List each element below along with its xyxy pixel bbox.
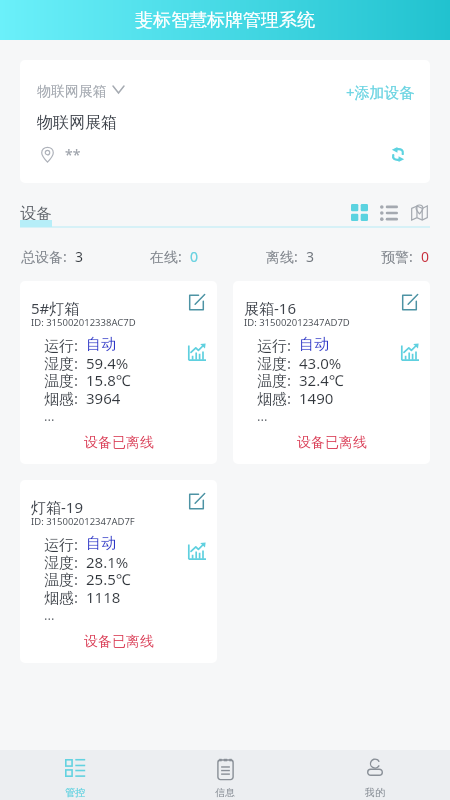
staticText: 3	[75, 247, 84, 266]
staticText: **	[65, 145, 81, 164]
staticText: 自动	[86, 335, 116, 354]
staticText: 运行:	[44, 335, 86, 355]
staticText: 烟感:	[44, 587, 86, 607]
staticText: ID: 315002012347AD7F	[31, 515, 135, 528]
staticText: ID: 315002012338AC7D	[31, 316, 136, 329]
staticText: 3	[306, 247, 315, 266]
staticText: ...	[44, 407, 55, 425]
staticText: 32.4℃	[299, 370, 344, 390]
staticText: 在线:	[150, 247, 190, 266]
staticText: 信息	[215, 786, 235, 799]
staticText: 59.4%	[86, 353, 129, 373]
button[interactable]: Edit	[401, 294, 418, 311]
staticText: 运行:	[44, 534, 86, 554]
staticText: 28.1%	[86, 552, 129, 572]
button[interactable]: 信息	[150, 750, 300, 800]
button[interactable]: 我的	[300, 750, 450, 800]
button[interactable]: 物联网展箱	[20, 60, 430, 183]
staticText: 温度:	[44, 569, 86, 589]
staticText: 烟感:	[257, 388, 299, 408]
button[interactable]: Chart	[187, 342, 207, 362]
staticText: 斐标智慧标牌管理系统	[135, 9, 315, 32]
staticText: 展箱-16	[244, 298, 296, 318]
staticText: 物联网展箱	[37, 113, 117, 133]
button[interactable]: Sync	[391, 147, 405, 162]
staticText: 自动	[299, 335, 329, 354]
staticText: 湿度:	[44, 552, 86, 572]
button[interactable]: 灯箱-19	[20, 480, 217, 663]
staticText: 湿度:	[257, 353, 299, 373]
button[interactable]: 展箱-16	[233, 281, 430, 464]
staticText: 设备已离线	[84, 633, 154, 651]
staticText: 运行:	[257, 335, 299, 355]
staticText: 0	[421, 247, 430, 266]
staticText: 温度:	[44, 370, 86, 390]
staticText: 物联网展箱	[37, 83, 107, 101]
button[interactable]: Edit	[188, 294, 205, 311]
staticText: 管控	[65, 786, 85, 799]
staticText: 烟感:	[44, 388, 86, 408]
button[interactable]: 管控	[0, 750, 150, 800]
staticText: ID: 315002012347AD7D	[244, 316, 350, 329]
staticText: +添加设备	[346, 82, 415, 102]
staticText: ...	[44, 606, 55, 624]
staticText: 1490	[299, 388, 334, 408]
button[interactable]: Chart	[187, 541, 207, 561]
staticText: 自动	[86, 534, 116, 553]
staticText: 15.8℃	[86, 370, 131, 390]
staticText: 5#灯箱	[31, 298, 80, 318]
staticText: 离线:	[266, 247, 306, 266]
staticText: 3964	[86, 388, 121, 408]
staticText: 灯箱-19	[31, 497, 83, 517]
button[interactable]: Grid view	[351, 204, 368, 221]
staticText: 温度:	[257, 370, 299, 390]
staticText: ...	[257, 407, 268, 425]
staticText: 预警:	[381, 247, 421, 266]
staticText: 1118	[86, 587, 121, 607]
staticText: 总设备:	[21, 247, 75, 266]
staticText: 0	[190, 247, 199, 266]
button[interactable]: +添加设备	[346, 82, 415, 102]
staticText: 我的	[365, 786, 385, 799]
button[interactable]: List view	[380, 204, 398, 222]
button[interactable]: Map view	[411, 204, 428, 221]
staticText: 设备	[20, 204, 52, 224]
button[interactable]: Chart	[400, 342, 420, 362]
button[interactable]: Edit	[188, 493, 205, 510]
staticText: 设备已离线	[297, 434, 367, 452]
staticText: 设备已离线	[84, 434, 154, 452]
staticText: 43.0%	[299, 353, 342, 373]
button[interactable]: 5#灯箱	[20, 281, 217, 464]
staticText: 25.5℃	[86, 569, 131, 589]
staticText: 湿度:	[44, 353, 86, 373]
